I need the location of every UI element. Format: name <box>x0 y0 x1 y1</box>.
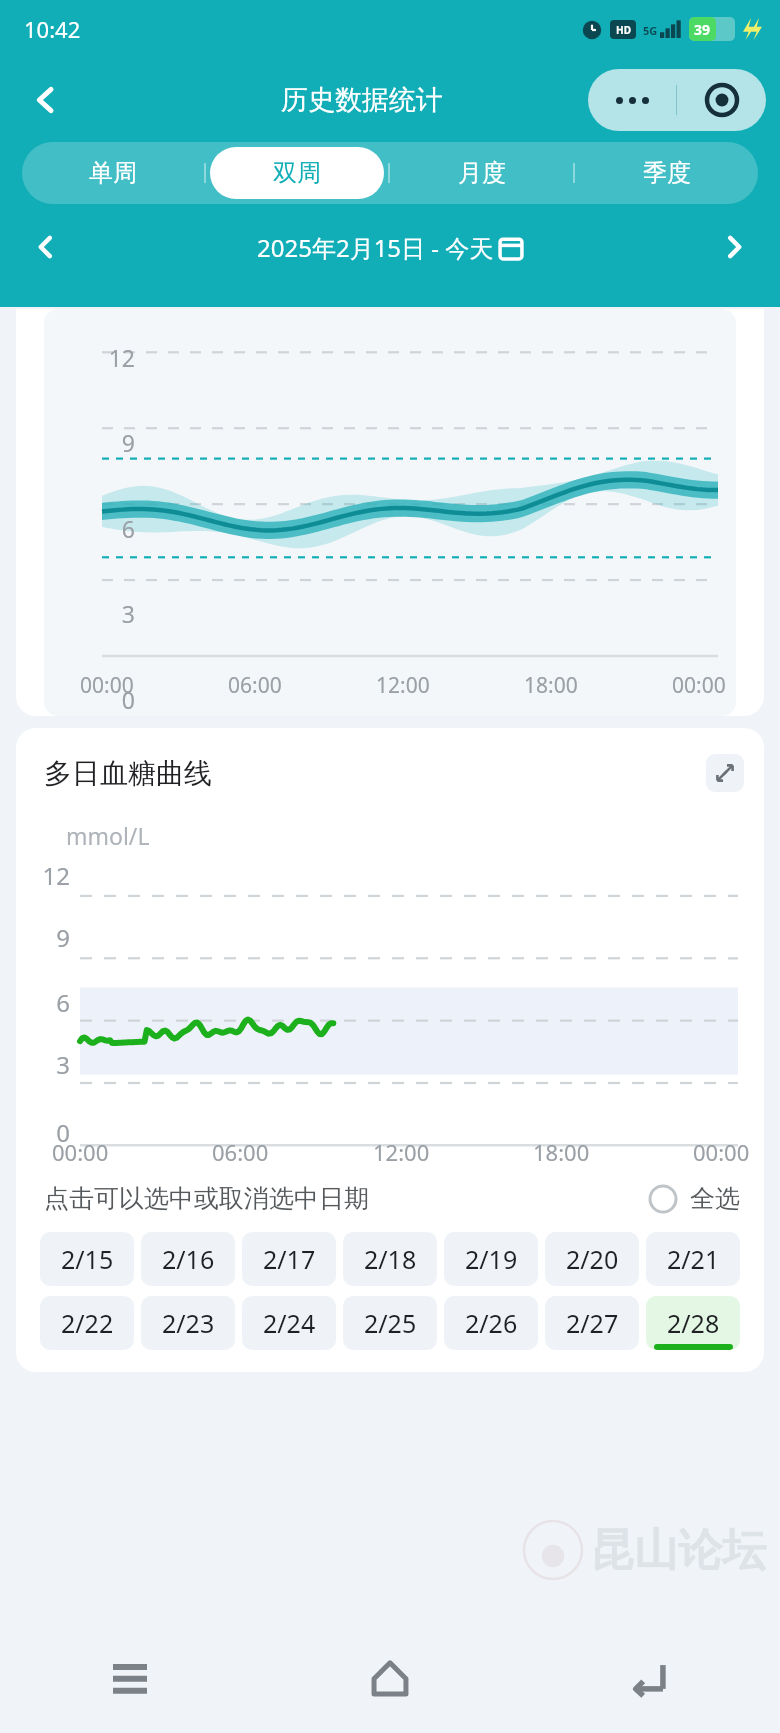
button[interactable]: Recent apps <box>0 1623 260 1733</box>
button[interactable]: 季度 <box>575 147 758 199</box>
staticText: 6 <box>66 513 135 544</box>
button[interactable]: 单周 <box>22 147 204 199</box>
staticText: 2/27 <box>566 1306 619 1340</box>
staticText: 6 <box>34 986 70 1019</box>
staticText: 月度 <box>458 158 506 188</box>
staticText: 12:00 <box>376 671 430 700</box>
button[interactable]: 2/21 <box>646 1232 740 1286</box>
staticText: 06:00 <box>228 671 282 700</box>
staticText: mmol/L <box>66 820 150 851</box>
staticText: 昆山论坛 <box>590 1523 766 1578</box>
staticText: 9 <box>66 427 135 458</box>
button[interactable]: 月度 <box>390 147 573 199</box>
button[interactable]: Back <box>18 72 74 128</box>
button[interactable]: 2/28 <box>646 1296 740 1350</box>
button[interactable]: 2/26 <box>444 1296 538 1350</box>
staticText: 9 <box>34 921 70 954</box>
staticText: 0 <box>66 684 135 715</box>
staticText: 2/28 <box>667 1306 720 1340</box>
button[interactable]: 2/22 <box>40 1296 134 1350</box>
button[interactable]: Home <box>260 1623 520 1733</box>
staticText: 00:00 <box>80 671 134 700</box>
staticText: 2/15 <box>61 1242 114 1276</box>
staticText: 2/19 <box>465 1242 518 1276</box>
button[interactable]: 2/15 <box>40 1232 134 1286</box>
button[interactable]: 全选 <box>648 1183 740 1214</box>
button[interactable]: 2/23 <box>141 1296 235 1350</box>
staticText: 2/24 <box>263 1306 316 1340</box>
button[interactable]: More options <box>588 69 676 131</box>
staticText: 00:00 <box>672 671 726 700</box>
staticText: 18:00 <box>533 1137 590 1167</box>
staticText: 全选 <box>690 1183 740 1214</box>
button[interactable]: 2/18 <box>343 1232 437 1286</box>
staticText: 2/25 <box>364 1306 417 1340</box>
staticText: 单周 <box>89 158 137 188</box>
button[interactable]: Expand chart <box>706 754 744 792</box>
staticText: 2/21 <box>667 1242 720 1276</box>
staticText: 3 <box>66 598 135 629</box>
button[interactable]: 2/20 <box>545 1232 639 1286</box>
staticText: 2/18 <box>364 1242 417 1276</box>
staticText: HD <box>616 23 631 37</box>
button[interactable]: 2/16 <box>141 1232 235 1286</box>
staticText: 双周 <box>273 158 321 188</box>
staticText: 00:00 <box>52 1137 109 1167</box>
staticText: 2/23 <box>162 1306 215 1340</box>
button[interactable]: Back <box>520 1623 780 1733</box>
staticText: 0 <box>34 1116 70 1149</box>
staticText: 3 <box>34 1048 70 1081</box>
staticText: 2025年2月15日 - 今天 <box>257 231 494 264</box>
button[interactable]: Previous period <box>18 219 74 275</box>
staticText: 2/22 <box>61 1306 114 1340</box>
staticText: 2/20 <box>566 1242 619 1276</box>
staticText: 历史数据统计 <box>281 83 443 117</box>
button[interactable]: Next period <box>706 219 762 275</box>
staticText: 39 <box>694 20 711 39</box>
staticText: 2/16 <box>162 1242 215 1276</box>
button[interactable]: Close <box>677 69 766 131</box>
staticText: 06:00 <box>212 1137 269 1167</box>
button[interactable]: 2025年2月15日 - 今天 <box>74 231 706 264</box>
button[interactable]: 2/25 <box>343 1296 437 1350</box>
button[interactable]: 2/27 <box>545 1296 639 1350</box>
staticText: 多日血糖曲线 <box>44 756 212 791</box>
staticText: 12 <box>34 859 70 892</box>
staticText: 00:00 <box>693 1137 750 1167</box>
staticText: 点击可以选中或取消选中日期 <box>44 1183 369 1214</box>
button[interactable]: 2/19 <box>444 1232 538 1286</box>
staticText: 12:00 <box>373 1137 430 1167</box>
staticText: 10:42 <box>24 14 81 44</box>
staticText: 2/26 <box>465 1306 518 1340</box>
button[interactable]: 双周 <box>210 147 384 199</box>
staticText: 季度 <box>643 158 691 188</box>
button[interactable]: 2/24 <box>242 1296 336 1350</box>
staticText: 18:00 <box>524 671 578 700</box>
staticText: 2/17 <box>263 1242 316 1276</box>
button[interactable]: 2/17 <box>242 1232 336 1286</box>
staticText: 12 <box>66 342 135 373</box>
staticText: 5G <box>643 23 658 38</box>
